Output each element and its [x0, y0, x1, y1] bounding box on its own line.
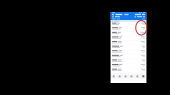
button[interactable] [111, 27, 146, 31]
button[interactable] [111, 31, 146, 36]
button[interactable]: Files [123, 75, 128, 78]
button[interactable] [111, 45, 146, 50]
button[interactable]: Calendar [117, 75, 123, 78]
button[interactable] [111, 54, 146, 59]
button[interactable] [111, 63, 146, 68]
button[interactable] [111, 68, 146, 73]
button[interactable]: Search [134, 75, 140, 78]
button[interactable]: Account [111, 13, 146, 15]
button[interactable] [111, 36, 146, 40]
button[interactable]: More [140, 75, 146, 78]
button[interactable] [111, 59, 146, 63]
button[interactable] [111, 40, 146, 45]
button[interactable] [111, 50, 146, 54]
button[interactable]: People [128, 75, 134, 78]
button[interactable]: Mail [111, 75, 117, 78]
button[interactable] [111, 22, 146, 27]
button[interactable]: Search [111, 20, 146, 22]
